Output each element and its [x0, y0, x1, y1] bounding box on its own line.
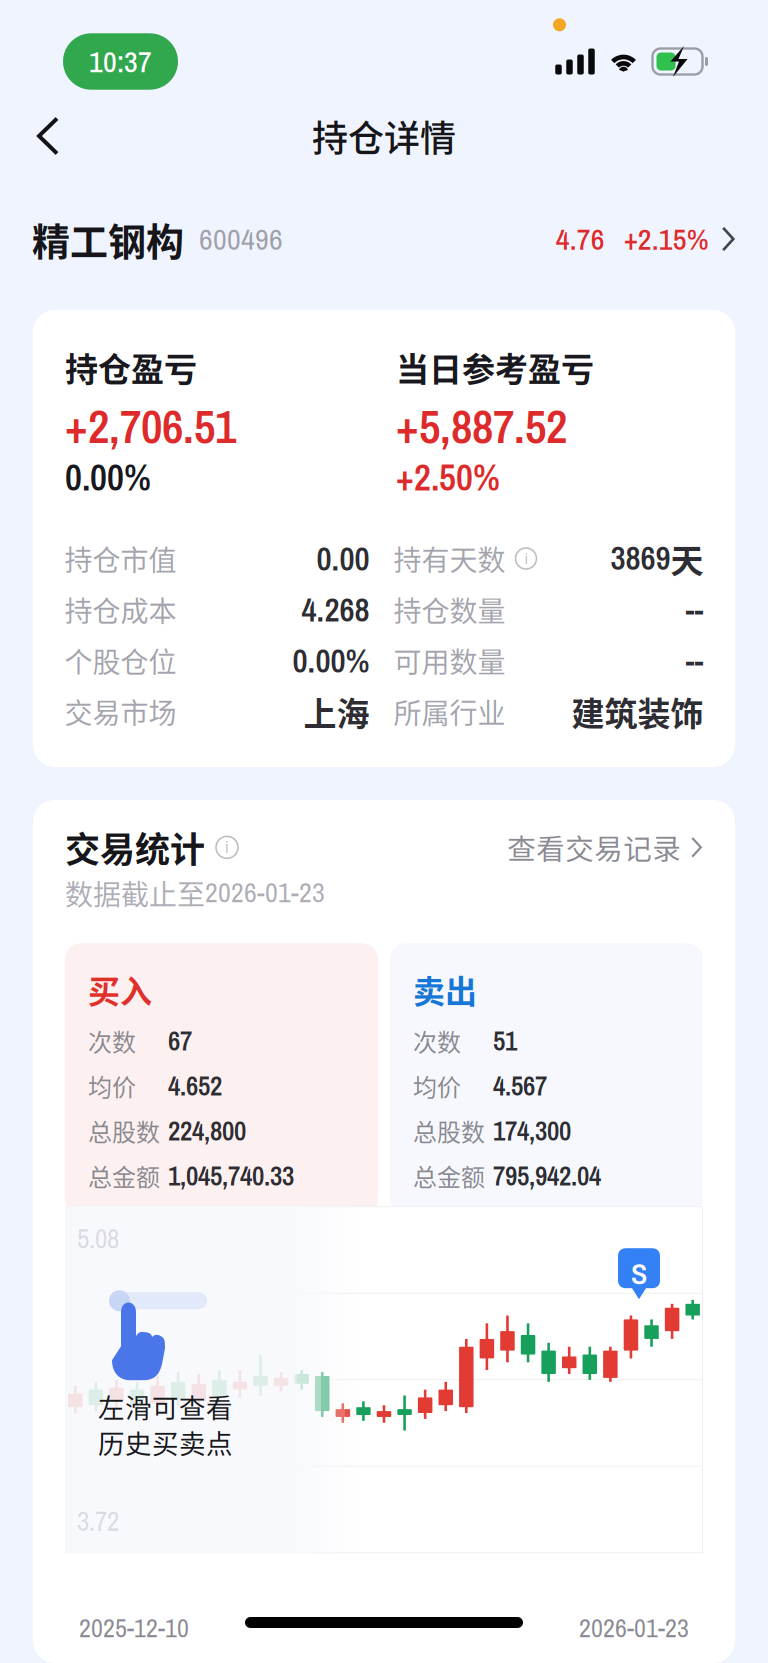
staticText: 均价	[88, 1068, 136, 1103]
staticText: 174,300	[493, 1112, 571, 1149]
button[interactable]: Back	[0, 97, 82, 174]
staticText: 交易市场	[64, 691, 176, 732]
staticText: +5,887.52	[396, 394, 567, 458]
staticText: 个股仓位	[64, 640, 176, 681]
staticText: 1,045,740.33	[168, 1157, 294, 1194]
staticText: 0.00	[316, 536, 369, 581]
staticText: 持仓数量	[393, 589, 505, 630]
staticText: 3869天	[610, 535, 703, 582]
staticText: --	[685, 638, 703, 683]
staticText: 上海	[303, 688, 369, 735]
staticText: 总金额	[413, 1158, 485, 1193]
staticText: 数据截止至2026-01-23	[65, 873, 325, 913]
staticText: 所属行业	[393, 691, 505, 732]
staticText: 3.72	[77, 1503, 119, 1539]
staticText: 51	[493, 1022, 517, 1059]
staticText: 持仓盈亏	[65, 343, 197, 391]
staticText: 0.00%	[292, 638, 369, 683]
staticText: 持仓市值	[64, 538, 176, 579]
staticText: 总股数	[413, 1113, 485, 1148]
staticText: 224,800	[168, 1112, 246, 1149]
button[interactable]: 查看交易记录	[507, 827, 703, 868]
staticText: 均价	[413, 1068, 461, 1103]
staticText: 10:37	[89, 41, 152, 82]
staticText: 0.00%	[65, 452, 151, 502]
staticText: 建筑装饰	[571, 688, 703, 735]
staticText: 买入	[88, 966, 152, 1012]
staticText: 67	[168, 1022, 192, 1059]
staticText: S	[631, 1253, 647, 1294]
staticText: +2,706.51	[65, 394, 236, 458]
staticText: 历史买卖点	[98, 1423, 233, 1461]
staticText: 当日参考盈亏	[396, 343, 594, 391]
button[interactable]: 精工钢构	[0, 196, 768, 282]
staticText: 可用数量	[393, 640, 505, 681]
staticText: 持仓详情	[312, 110, 456, 162]
staticText: 查看交易记录	[507, 827, 681, 868]
staticText: 持仓成本	[64, 589, 176, 630]
staticText: 5.08	[77, 1220, 119, 1257]
staticText: i	[524, 548, 527, 569]
staticText: 4.268	[301, 587, 369, 632]
staticText: 次数	[88, 1023, 136, 1058]
staticText: --	[685, 587, 703, 632]
staticText: i	[225, 837, 229, 858]
staticText: 总股数	[88, 1113, 160, 1148]
staticText: +2.50%	[396, 452, 500, 502]
staticText: 600496	[199, 219, 283, 259]
staticText: 4.652	[168, 1067, 222, 1104]
staticText: 交易统计	[65, 822, 205, 873]
staticText: 卖出	[413, 966, 477, 1012]
staticText: 2025-12-10	[79, 1610, 189, 1645]
staticText: 4.76	[556, 219, 605, 259]
staticText: 精工钢构	[32, 211, 184, 266]
staticText: 左滑可查看	[98, 1387, 233, 1425]
staticText: 4.567	[493, 1067, 547, 1104]
staticText: 2026-01-23	[579, 1610, 689, 1645]
staticText: 持有天数	[393, 538, 505, 579]
staticText: 次数	[413, 1023, 461, 1058]
staticText: 总金额	[88, 1158, 160, 1193]
staticText: +2.15%	[624, 219, 709, 259]
staticText: 795,942.04	[493, 1157, 601, 1194]
